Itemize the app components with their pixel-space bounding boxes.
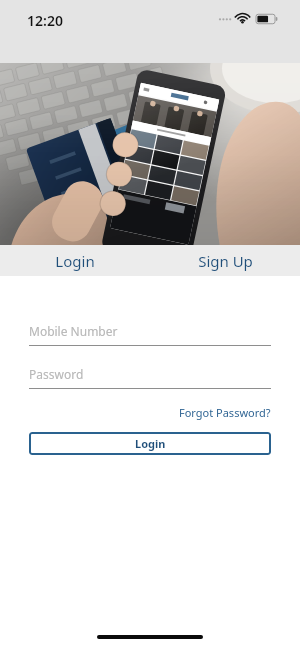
button[interactable]: Mobile Number — [29, 323, 271, 346]
button[interactable]: Login — [0, 245, 150, 276]
staticText: Forgot Password? — [179, 405, 271, 420]
staticText: Sign Up — [198, 251, 253, 271]
staticText: Login — [135, 436, 166, 451]
staticText: Login — [55, 251, 95, 271]
staticText: Password — [29, 366, 84, 382]
button[interactable]: Forgot Password? — [179, 403, 271, 422]
staticText: Mobile Number — [29, 323, 118, 339]
button[interactable]: Sign Up — [150, 245, 300, 276]
staticText: 12:20 — [27, 11, 63, 30]
button[interactable]: Password — [29, 366, 271, 389]
button[interactable]: Login — [29, 432, 271, 455]
